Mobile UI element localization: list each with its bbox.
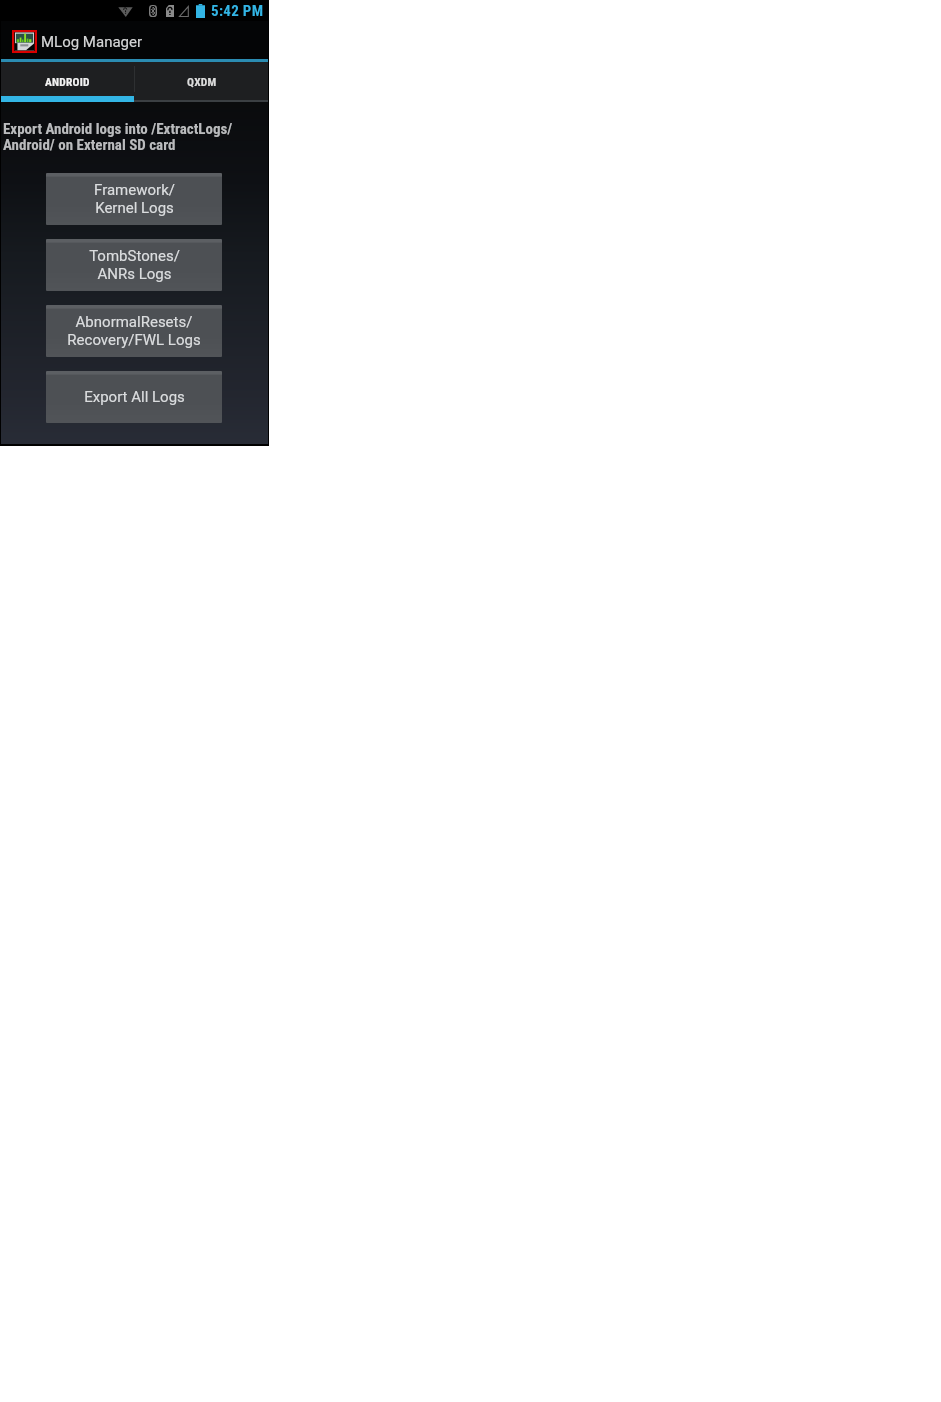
button[interactable]: ANDROID — [1, 62, 134, 96]
button[interactable]: AbnormalResets/ Recovery/FWL Logs — [46, 305, 222, 357]
staticText: Export All Logs — [84, 388, 185, 406]
staticText: 5:42 PM — [211, 2, 264, 20]
staticText: TombStones/ ANRs Logs — [89, 247, 180, 283]
button[interactable]: Export All Logs — [46, 371, 222, 423]
staticText: ANDROID — [45, 75, 90, 88]
staticText: Framework/ Kernel Logs — [94, 181, 175, 217]
staticText: QXDM — [187, 75, 217, 88]
button[interactable]: Framework/ Kernel Logs — [46, 173, 222, 225]
staticText: MLog Manager — [41, 33, 143, 51]
staticText: Export Android logs into /ExtractLogs/ A… — [3, 120, 233, 153]
button[interactable]: QXDM — [135, 62, 268, 96]
button[interactable]: TombStones/ ANRs Logs — [46, 239, 222, 291]
staticText: AbnormalResets/ Recovery/FWL Logs — [67, 313, 201, 349]
